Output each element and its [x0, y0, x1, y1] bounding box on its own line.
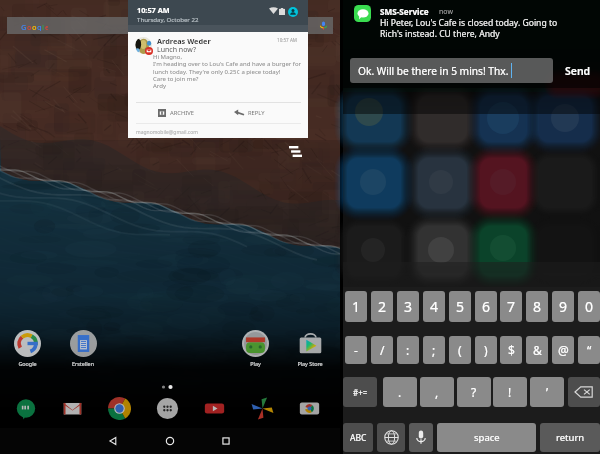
staticText: o	[32, 22, 37, 31]
staticText: ?	[471, 384, 477, 400]
button[interactable]: -	[345, 336, 367, 364]
staticText: g	[37, 22, 42, 31]
button[interactable]: $	[500, 336, 522, 364]
button[interactable]: Switch keyboard	[377, 423, 405, 452]
staticText: I'm heading over to Lou's Cafe and have …	[153, 60, 302, 68]
button[interactable]: @	[552, 336, 574, 364]
button[interactable]: Apps	[155, 396, 179, 420]
button[interactable]: 7	[500, 291, 522, 322]
button[interactable]: Messages	[354, 5, 371, 22]
button[interactable]: Play	[237, 330, 273, 367]
button[interactable]: “	[578, 336, 600, 364]
staticText: )	[484, 342, 488, 358]
staticText: ,	[435, 384, 439, 400]
button[interactable]: 9	[552, 291, 574, 322]
button[interactable]: Google	[9, 330, 45, 367]
other: Voice search	[319, 21, 328, 30]
button[interactable]: 5	[449, 291, 471, 322]
button[interactable]: #+=	[343, 377, 377, 407]
staticText: @	[558, 342, 569, 358]
button[interactable]: Gmail	[60, 396, 84, 420]
staticText: Rich's instead. CU there, Andy	[380, 28, 500, 40]
button[interactable]: Camera	[297, 396, 321, 420]
button[interactable]: ;	[423, 336, 445, 364]
button[interactable]: &	[526, 336, 548, 364]
button[interactable]: 3	[397, 291, 419, 322]
button[interactable]: G	[7, 17, 333, 34]
staticText: #+=	[353, 387, 368, 398]
button[interactable]: )	[475, 336, 497, 364]
button[interactable]: Ok. Will be there in 5 mins! Thx.	[350, 58, 553, 83]
staticText: “	[587, 342, 592, 358]
button[interactable]: .	[383, 377, 417, 407]
staticText: 0	[585, 297, 594, 316]
staticText: Play	[250, 360, 261, 367]
button[interactable]: Chrome	[107, 396, 131, 420]
staticText: return	[556, 431, 585, 444]
staticText: 2	[378, 297, 387, 316]
staticText: 10:57 AM	[277, 37, 298, 43]
button[interactable]: Backspace	[568, 377, 600, 407]
button[interactable]: REPLY	[228, 103, 301, 122]
staticText: l	[42, 22, 45, 31]
button[interactable]: (	[449, 336, 471, 364]
button[interactable]: :	[397, 336, 419, 364]
staticText: /	[380, 342, 385, 358]
other: More notifications	[289, 146, 302, 157]
staticText: !	[508, 384, 512, 400]
button[interactable]: Recents	[219, 434, 233, 448]
button[interactable]: /	[371, 336, 393, 364]
button[interactable]: 2	[371, 291, 393, 322]
button[interactable]: Dictation	[409, 423, 433, 452]
staticText: G	[21, 22, 27, 31]
button[interactable]: Erstellen	[65, 330, 101, 367]
staticText: Lunch now?	[157, 45, 196, 55]
button[interactable]: 1	[345, 291, 367, 322]
button[interactable]: ,	[420, 377, 454, 407]
button[interactable]: Play Store	[292, 330, 328, 367]
staticText: e	[45, 22, 48, 31]
staticText: magnomobile@gmail.com	[136, 129, 198, 136]
button[interactable]: Photos	[250, 396, 274, 420]
button[interactable]: ABC	[343, 423, 373, 452]
staticText: (	[458, 342, 462, 358]
staticText: 3	[404, 297, 413, 316]
staticText: ;	[432, 342, 436, 358]
staticText: Thursday, October 22	[137, 15, 199, 23]
button[interactable]: ’	[530, 377, 564, 407]
staticText: Ardy	[153, 82, 166, 90]
button[interactable]: 8	[526, 291, 548, 322]
staticText: 7	[507, 297, 516, 316]
button[interactable]: ARCHIVE	[136, 103, 221, 122]
staticText: :	[406, 342, 410, 358]
staticText: ABC	[350, 432, 367, 444]
staticText: Google	[18, 360, 37, 367]
button[interactable]: Home	[163, 434, 177, 448]
button[interactable]: 6	[475, 291, 497, 322]
staticText: 5	[456, 297, 465, 316]
staticText: Care to join me?	[153, 75, 199, 83]
staticText: Play Store	[297, 360, 323, 367]
staticText: Ok. Will be there in 5 mins! Thx.	[358, 64, 509, 78]
button[interactable]: ?	[457, 377, 491, 407]
staticText: Send	[565, 64, 591, 78]
button[interactable]: 4	[423, 291, 445, 322]
staticText: o	[27, 22, 32, 31]
button[interactable]: Hangouts	[13, 396, 37, 420]
staticText: Erstellen	[72, 360, 94, 367]
button[interactable]: Back	[106, 434, 120, 448]
button[interactable]: Send	[559, 58, 597, 83]
button[interactable]: return	[540, 423, 600, 452]
button[interactable]: 0	[578, 291, 600, 322]
staticText: Ardreas Weder	[157, 36, 211, 46]
staticText: 4	[430, 297, 439, 316]
button[interactable]: YouTube	[202, 396, 226, 420]
staticText: lunch today. They're only 0.25¢ a piece …	[153, 68, 281, 76]
staticText: 1	[352, 297, 361, 316]
button[interactable]: space	[437, 423, 536, 452]
staticText: 10:57 AM	[137, 5, 170, 15]
staticText: .	[398, 384, 402, 400]
button[interactable]: !	[493, 377, 527, 407]
staticText: &	[533, 342, 542, 358]
staticText: Hi Peter, Lou's Cafe is closed today. Go…	[380, 17, 558, 29]
